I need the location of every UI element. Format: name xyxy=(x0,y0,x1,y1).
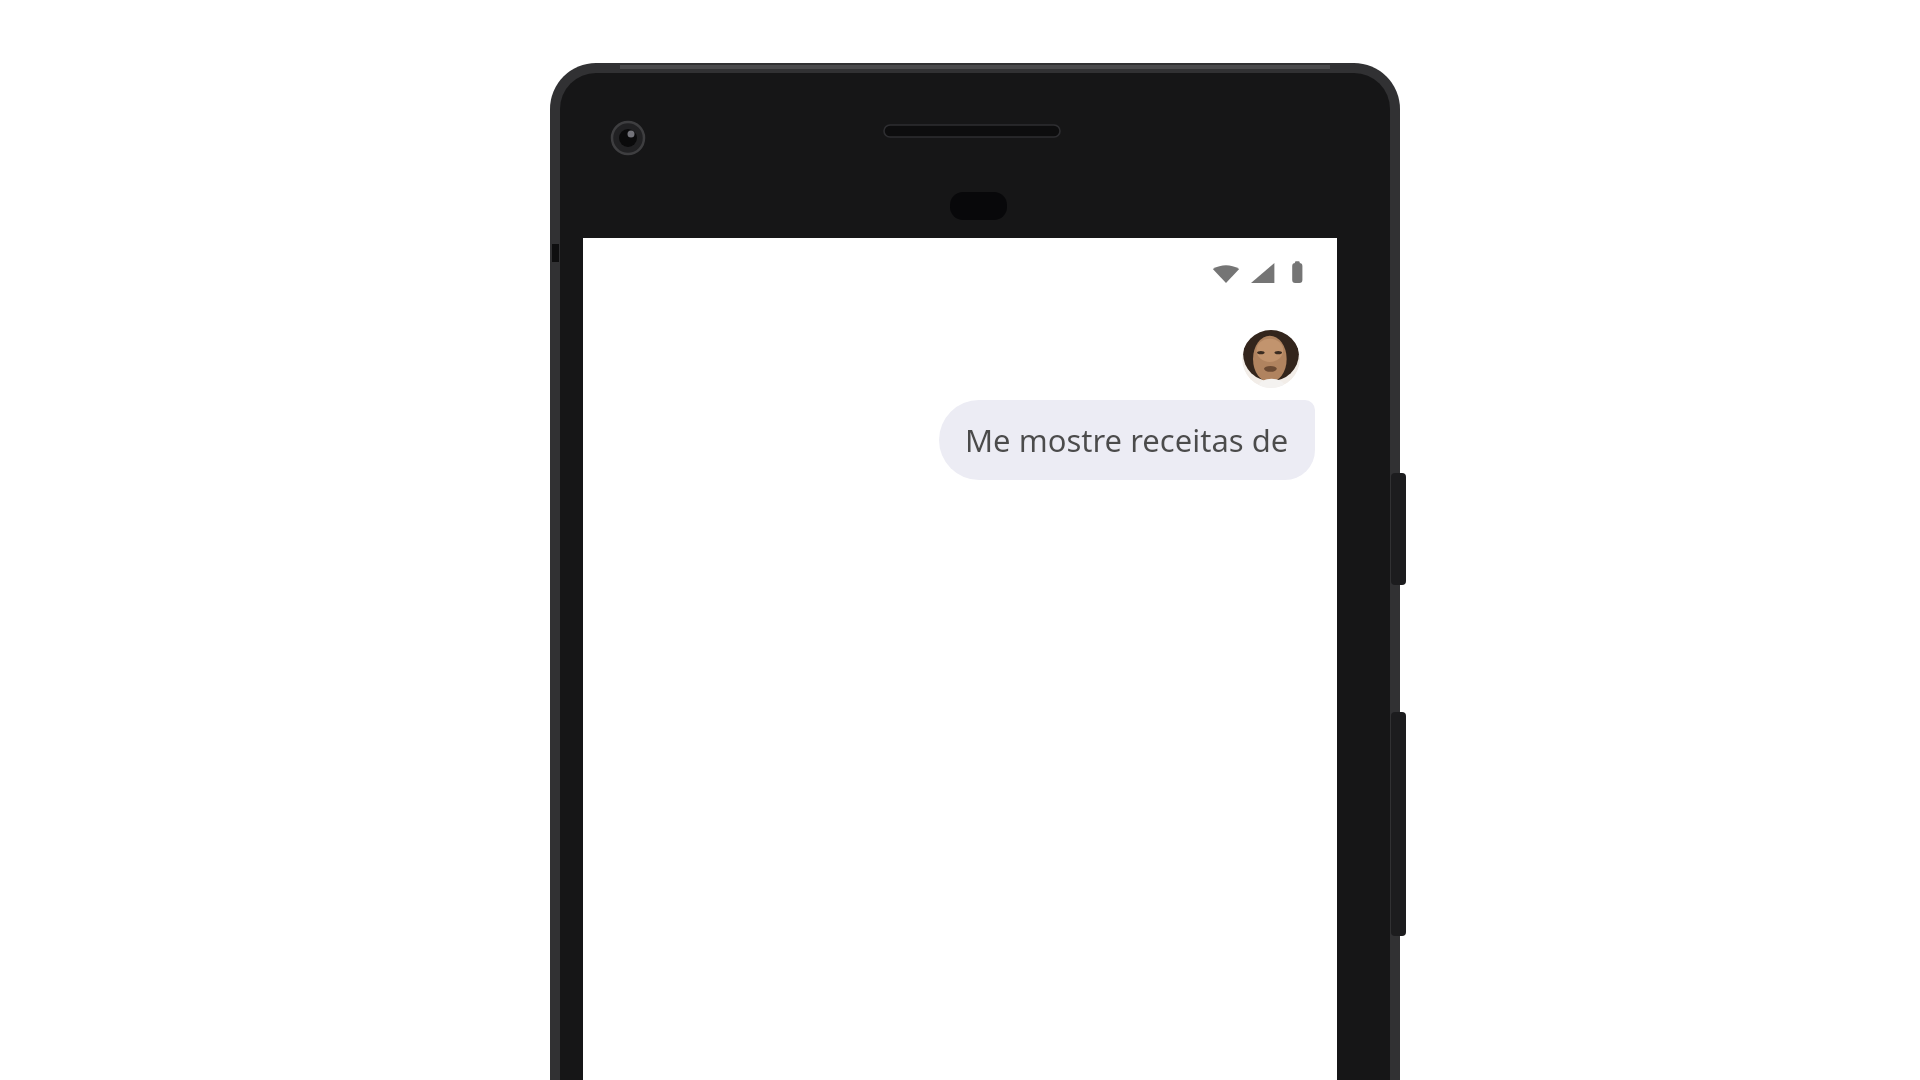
other: Battery xyxy=(1285,258,1315,288)
staticText: Me mostre receitas de xyxy=(965,419,1289,461)
other: Mobile signal xyxy=(1248,258,1278,288)
button[interactable]: Profile photo xyxy=(1242,330,1300,388)
button[interactable]: Me mostre receitas de xyxy=(939,400,1315,480)
other: Wi-Fi xyxy=(1211,258,1241,288)
